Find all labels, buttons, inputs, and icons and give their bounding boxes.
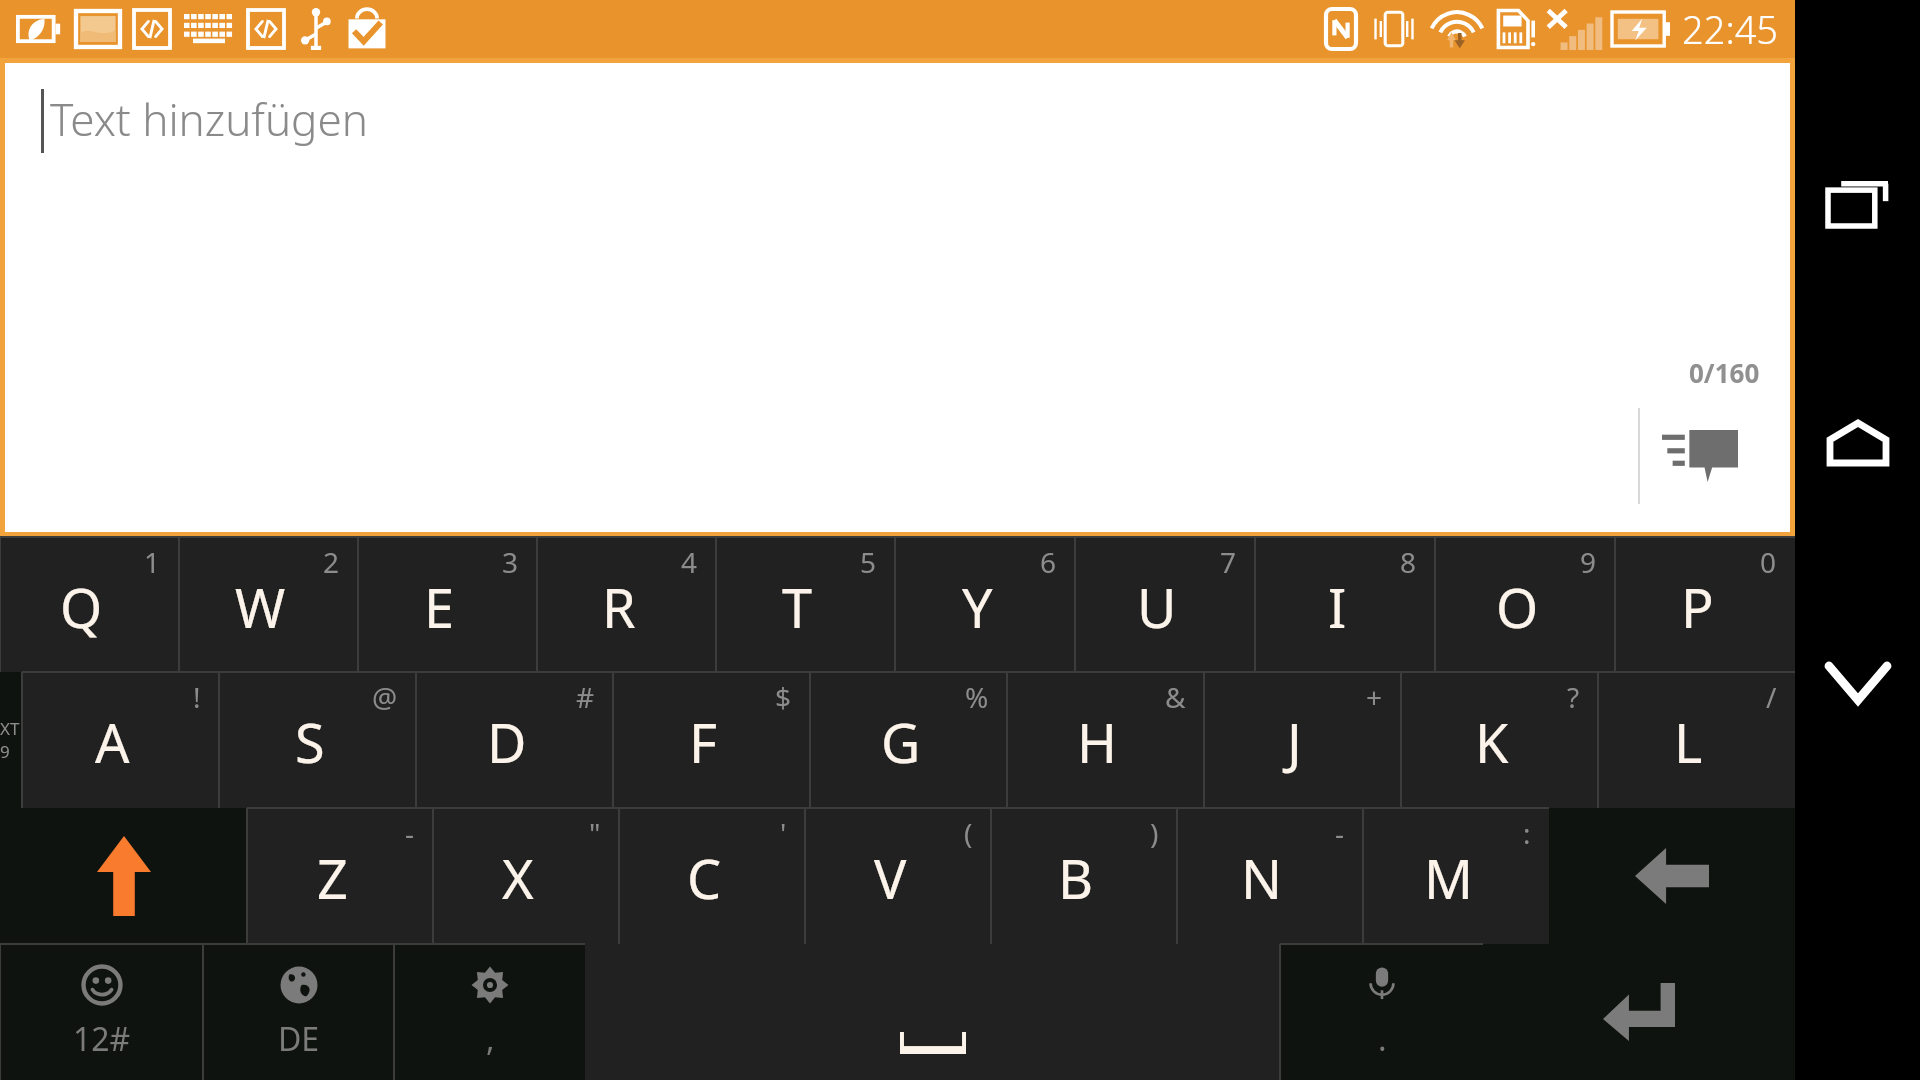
staticText: 2 <box>323 543 340 581</box>
staticText: XT9 <box>0 717 22 763</box>
staticText: N <box>1241 841 1283 915</box>
staticText: # <box>576 678 595 716</box>
staticText: " <box>589 814 601 852</box>
button[interactable]: M <box>1363 808 1549 944</box>
staticText: % <box>965 678 989 716</box>
button[interactable]: P <box>1615 537 1795 672</box>
button[interactable]: I <box>1255 537 1435 672</box>
staticText: B <box>1058 841 1094 915</box>
staticText: L <box>1674 705 1703 779</box>
button[interactable]: Text hinzufügen <box>5 63 1790 532</box>
button[interactable]: D <box>416 672 613 808</box>
button[interactable]: Sprache <box>203 944 394 1080</box>
button[interactable]: N <box>1177 808 1363 944</box>
button[interactable]: Sprache <box>1280 944 1483 1080</box>
staticText: I <box>1328 570 1347 644</box>
staticText: A <box>95 705 130 779</box>
staticText: , <box>486 1017 495 1061</box>
staticText: & <box>1165 678 1186 716</box>
staticText: ' <box>780 814 787 852</box>
button[interactable]: J <box>1204 672 1401 808</box>
staticText: 3 <box>502 543 519 581</box>
button[interactable]: Z <box>247 808 433 944</box>
staticText: T <box>782 570 813 644</box>
staticText: 22:45 <box>1682 3 1779 55</box>
button[interactable]: Leertaste <box>585 944 1280 1080</box>
button[interactable]: Letzte Apps <box>1795 148 1920 258</box>
button[interactable]: G <box>810 672 1007 808</box>
staticText: Y <box>962 570 993 644</box>
staticText: F <box>689 705 718 779</box>
button[interactable]: C <box>619 808 805 944</box>
staticText: ) <box>1150 814 1159 852</box>
staticText: - <box>405 814 415 852</box>
button[interactable]: Umschalt <box>0 808 247 944</box>
button[interactable]: Einstellungen <box>394 944 585 1080</box>
staticText: S <box>295 705 325 779</box>
staticText: H <box>1077 705 1118 779</box>
staticText: 9 <box>1580 543 1597 581</box>
button[interactable]: R <box>537 537 716 672</box>
staticText: / <box>1766 678 1777 716</box>
button[interactable]: S <box>219 672 416 808</box>
staticText: 5 <box>860 543 877 581</box>
button[interactable]: E <box>358 537 537 672</box>
button[interactable]: A <box>22 672 219 808</box>
staticText: : <box>1523 814 1531 852</box>
staticText: Z <box>317 841 348 915</box>
staticText: V <box>874 841 907 915</box>
button[interactable]: Startseite <box>1795 388 1920 498</box>
staticText: 7 <box>1220 543 1237 581</box>
button[interactable]: Tastatur ausblenden <box>1795 628 1920 738</box>
staticText: C <box>687 841 722 915</box>
staticText: U <box>1137 570 1177 644</box>
button[interactable]: V <box>805 808 991 944</box>
button[interactable]: Symbole <box>0 944 203 1080</box>
button[interactable]: Löschen <box>1549 808 1795 944</box>
button[interactable]: W <box>179 537 358 672</box>
staticText: G <box>881 705 921 779</box>
staticText: 0/160 <box>1689 355 1760 390</box>
staticText: 6 <box>1040 543 1057 581</box>
button[interactable]: T <box>716 537 895 672</box>
button[interactable]: K <box>1401 672 1598 808</box>
staticText: J <box>1287 705 1302 779</box>
button[interactable]: U <box>1075 537 1255 672</box>
staticText: D <box>487 705 527 779</box>
button[interactable]: X <box>433 808 619 944</box>
button[interactable]: Y <box>895 537 1075 672</box>
staticText: Q <box>60 570 103 644</box>
button[interactable]: F <box>613 672 810 808</box>
button[interactable]: Q <box>0 537 179 672</box>
button[interactable]: H <box>1007 672 1204 808</box>
staticText: E <box>424 570 455 644</box>
staticText: O <box>1496 570 1539 644</box>
staticText: DE <box>278 1017 320 1061</box>
staticText: 4 <box>681 543 698 581</box>
button[interactable]: B <box>991 808 1177 944</box>
staticText: $ <box>775 678 792 716</box>
staticText: - <box>1335 814 1345 852</box>
button[interactable]: Senden <box>1640 408 1760 504</box>
staticText: @ <box>372 678 398 716</box>
button[interactable]: L <box>1598 672 1795 808</box>
staticText: P <box>1681 570 1714 644</box>
staticText: Text hinzufügen <box>50 89 368 149</box>
staticText: ! <box>193 678 201 716</box>
staticText: ( <box>964 814 973 852</box>
staticText: 8 <box>1400 543 1417 581</box>
staticText: M <box>1424 841 1473 915</box>
staticText: ? <box>1567 678 1580 716</box>
staticText: + <box>1366 678 1383 716</box>
staticText: W <box>235 570 286 644</box>
staticText: X <box>502 841 534 915</box>
staticText: 0 <box>1760 543 1777 581</box>
staticText: R <box>602 570 636 644</box>
staticText: 1 <box>144 543 161 581</box>
staticText: 12# <box>73 1017 131 1061</box>
staticText: K <box>1475 705 1509 779</box>
button[interactable]: Eingabe <box>1483 944 1795 1080</box>
staticText: . <box>1378 1017 1387 1061</box>
button[interactable]: O <box>1435 537 1615 672</box>
